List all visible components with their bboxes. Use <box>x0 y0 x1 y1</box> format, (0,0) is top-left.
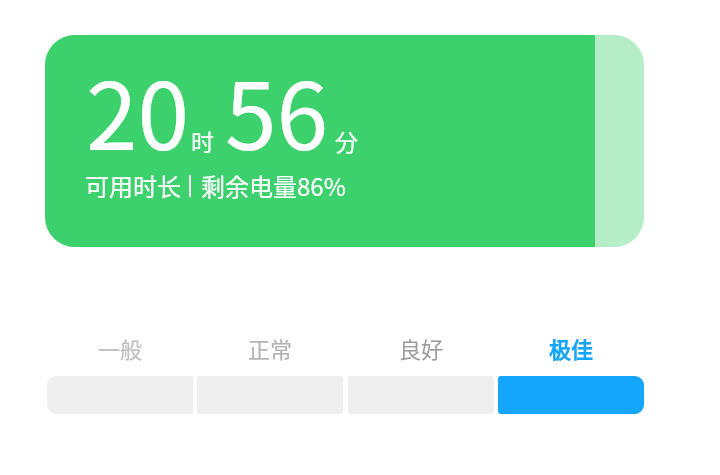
staticText: 时 <box>191 124 214 157</box>
button[interactable]: 电池剩余可用时长 20 时 56 分，剩余电量 86% <box>45 35 644 247</box>
staticText: 可用时长 <box>85 168 181 203</box>
staticText: 一般 <box>98 332 143 364</box>
button[interactable]: 正常 <box>197 331 343 365</box>
staticText: 剩余电量86% <box>201 168 346 203</box>
staticText: 20 <box>86 42 190 177</box>
button[interactable]: 一般 <box>47 331 193 365</box>
button[interactable]: 良好 <box>348 331 494 365</box>
staticText: 56 <box>225 42 329 177</box>
staticText: 良好 <box>399 332 444 364</box>
staticText: 正常 <box>248 332 293 364</box>
button[interactable]: 极佳 <box>498 331 644 365</box>
staticText: 分 <box>335 124 358 157</box>
button[interactable]: 极佳 <box>498 376 644 414</box>
staticText: 极佳 <box>549 332 594 364</box>
